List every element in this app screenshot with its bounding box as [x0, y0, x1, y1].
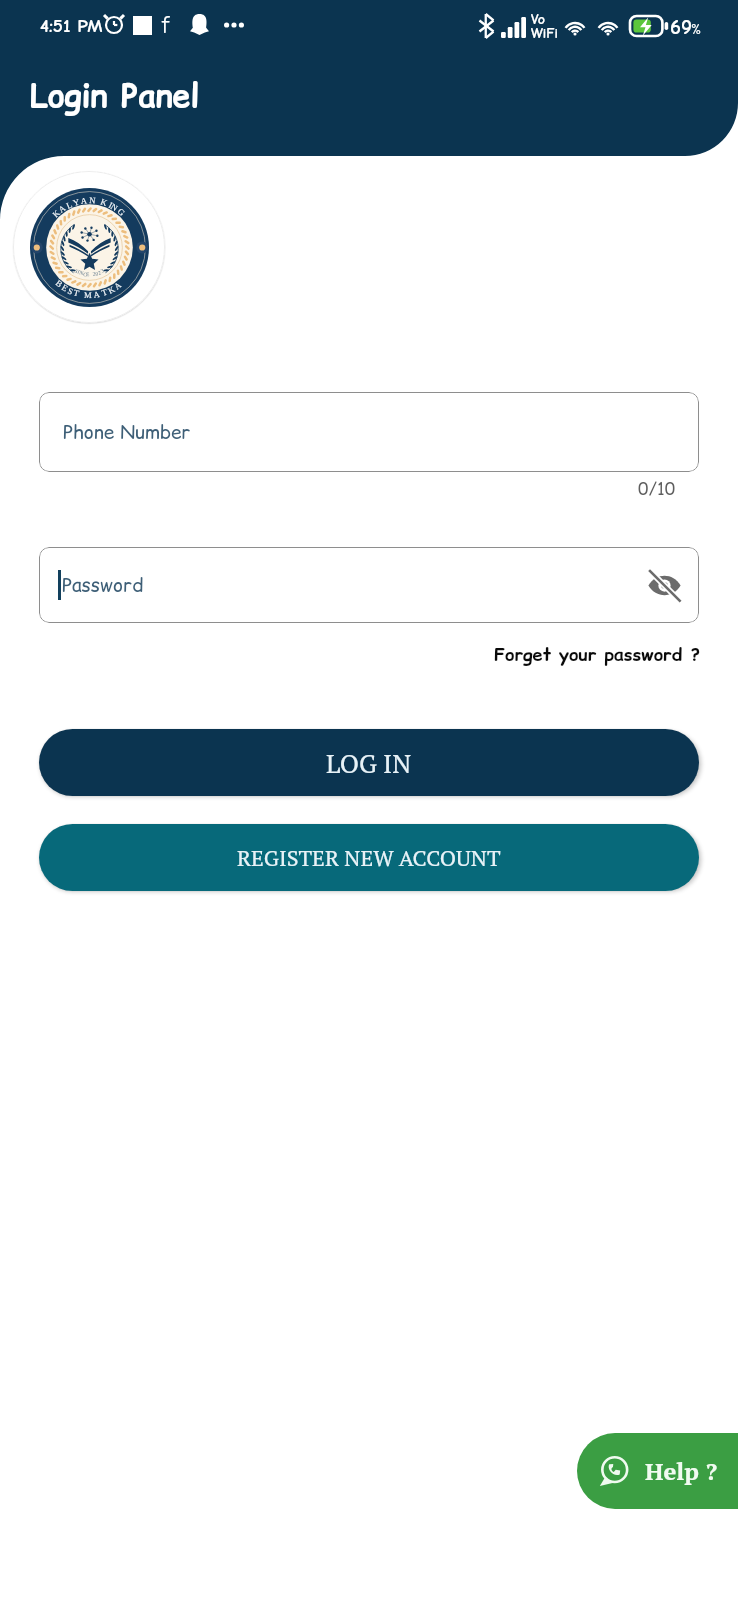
staticText: Password [62, 572, 144, 599]
staticText: 69 [670, 15, 692, 39]
button[interactable]: Show password [641, 562, 687, 608]
staticText: 4:51 PM [40, 15, 103, 37]
button[interactable]: Phone Number [39, 392, 699, 472]
staticText: REGISTER NEW ACCOUNT [237, 843, 501, 872]
button[interactable]: Forget your password ? [494, 642, 701, 667]
staticText: 0/10 [638, 477, 676, 501]
button[interactable]: Password [39, 547, 699, 623]
staticText: LOG IN [326, 746, 412, 780]
staticText: Phone Number [63, 419, 191, 446]
button[interactable]: REGISTER NEW ACCOUNT [39, 824, 699, 891]
button[interactable]: Help ? [577, 1433, 738, 1509]
staticText: WiFi [531, 25, 558, 41]
staticText: f [162, 11, 169, 39]
button[interactable]: LOG IN [39, 729, 699, 796]
staticText: Help ? [645, 1455, 718, 1487]
staticText: Login Panel [30, 73, 200, 118]
button[interactable]: App logo [13, 171, 165, 323]
staticText: % [691, 21, 702, 37]
staticText: Vo [531, 11, 545, 27]
